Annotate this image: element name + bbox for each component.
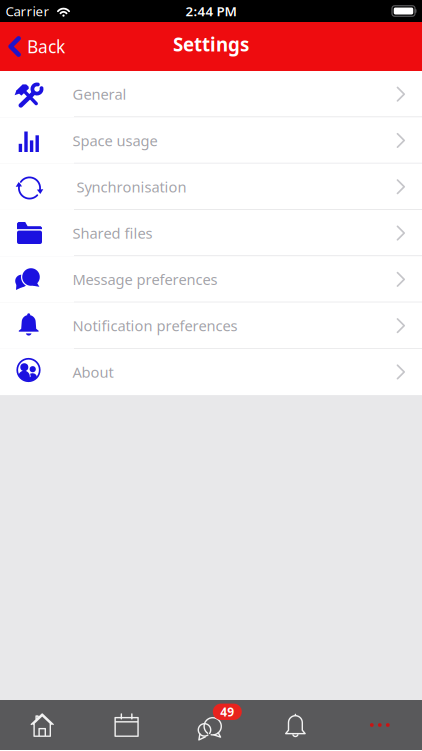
- staticText: Carrier: [5, 2, 49, 20]
- staticText: About: [72, 362, 113, 382]
- button[interactable]: About: [0, 349, 422, 395]
- staticText: Settings: [173, 32, 249, 57]
- button[interactable]: Messages: [169, 700, 253, 750]
- button[interactable]: Shared files: [0, 210, 422, 256]
- staticText: Notification preferences: [72, 316, 237, 335]
- staticText: General: [72, 84, 126, 104]
- staticText: Shared files: [72, 223, 152, 243]
- staticText: 2:44 PM: [185, 2, 236, 20]
- staticText: 49: [220, 704, 234, 720]
- button[interactable]: More: [338, 700, 422, 750]
- button[interactable]: General: [0, 71, 422, 117]
- button[interactable]: Message preferences: [0, 256, 422, 302]
- staticText: Back: [27, 35, 65, 58]
- button[interactable]: Space usage: [0, 117, 422, 164]
- staticText: Synchronisation: [72, 177, 186, 196]
- button[interactable]: Home: [0, 700, 84, 750]
- button[interactable]: Back: [0, 35, 65, 58]
- button[interactable]: Notifications: [253, 700, 338, 750]
- button[interactable]: Notification preferences: [0, 302, 422, 349]
- button[interactable]: Calendar: [84, 700, 169, 750]
- staticText: Message preferences: [72, 270, 217, 289]
- staticText: Space usage: [72, 131, 157, 150]
- button[interactable]: Synchronisation: [0, 164, 422, 210]
